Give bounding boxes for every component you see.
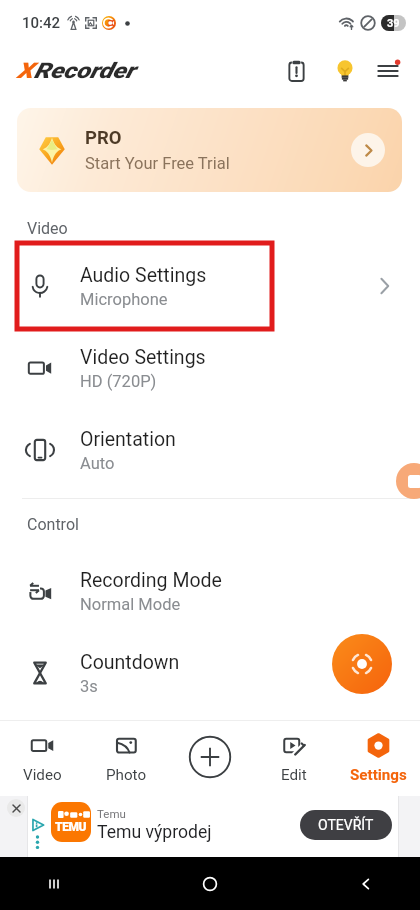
- button[interactable]: Video: [0, 720, 84, 796]
- staticText: Control: [27, 515, 79, 534]
- staticText: Audio Settings: [80, 264, 207, 287]
- button[interactable]: Add: [188, 735, 232, 779]
- staticText: OTEVŘÍT: [318, 817, 374, 833]
- button[interactable]: Orientation: [0, 409, 420, 491]
- staticText: Edit: [281, 766, 307, 784]
- staticText: HD (720P): [80, 372, 157, 391]
- button[interactable]: Countdown: [0, 632, 420, 714]
- button[interactable]: Tips: [325, 51, 365, 91]
- staticText: Recorder: [34, 58, 135, 83]
- staticText: Recording Mode: [80, 569, 222, 592]
- button[interactable]: Report issue: [276, 51, 316, 91]
- staticText: PRO: [85, 127, 122, 149]
- button[interactable]: Recording Mode: [0, 550, 420, 632]
- staticText: Video: [23, 766, 62, 784]
- staticText: Start Your Free Trial: [85, 154, 230, 173]
- staticText: Video: [27, 219, 68, 238]
- staticText: X: [17, 58, 34, 83]
- button[interactable]: PRO: [17, 108, 402, 192]
- other: Stop recording: [396, 463, 420, 499]
- button[interactable]: Edit: [252, 720, 336, 796]
- button[interactable]: Photo: [84, 720, 168, 796]
- button[interactable]: Close ad: [7, 799, 25, 817]
- button[interactable]: Record: [332, 634, 392, 694]
- staticText: Auto: [80, 454, 115, 473]
- button[interactable]: Video Settings: [0, 327, 420, 409]
- staticText: Temu: [97, 807, 126, 820]
- staticText: Video Settings: [80, 346, 206, 369]
- staticText: Photo: [106, 766, 147, 784]
- staticText: Normal Mode: [80, 595, 181, 614]
- staticText: Orientation: [80, 428, 176, 451]
- staticText: Temu výprodej: [97, 822, 212, 843]
- staticText: Countdown: [80, 651, 180, 674]
- button[interactable]: OTEVŘÍT: [300, 810, 392, 840]
- staticText: Settings: [350, 766, 407, 784]
- staticText: TEMU: [55, 820, 87, 834]
- staticText: 39: [387, 17, 400, 30]
- button[interactable]: Menu: [368, 51, 408, 91]
- button[interactable]: Audio Settings: [0, 245, 420, 327]
- staticText: 3s: [80, 677, 98, 696]
- staticText: 10:42: [22, 14, 61, 32]
- button[interactable]: Settings: [336, 720, 420, 796]
- staticText: Microphone: [80, 290, 168, 309]
